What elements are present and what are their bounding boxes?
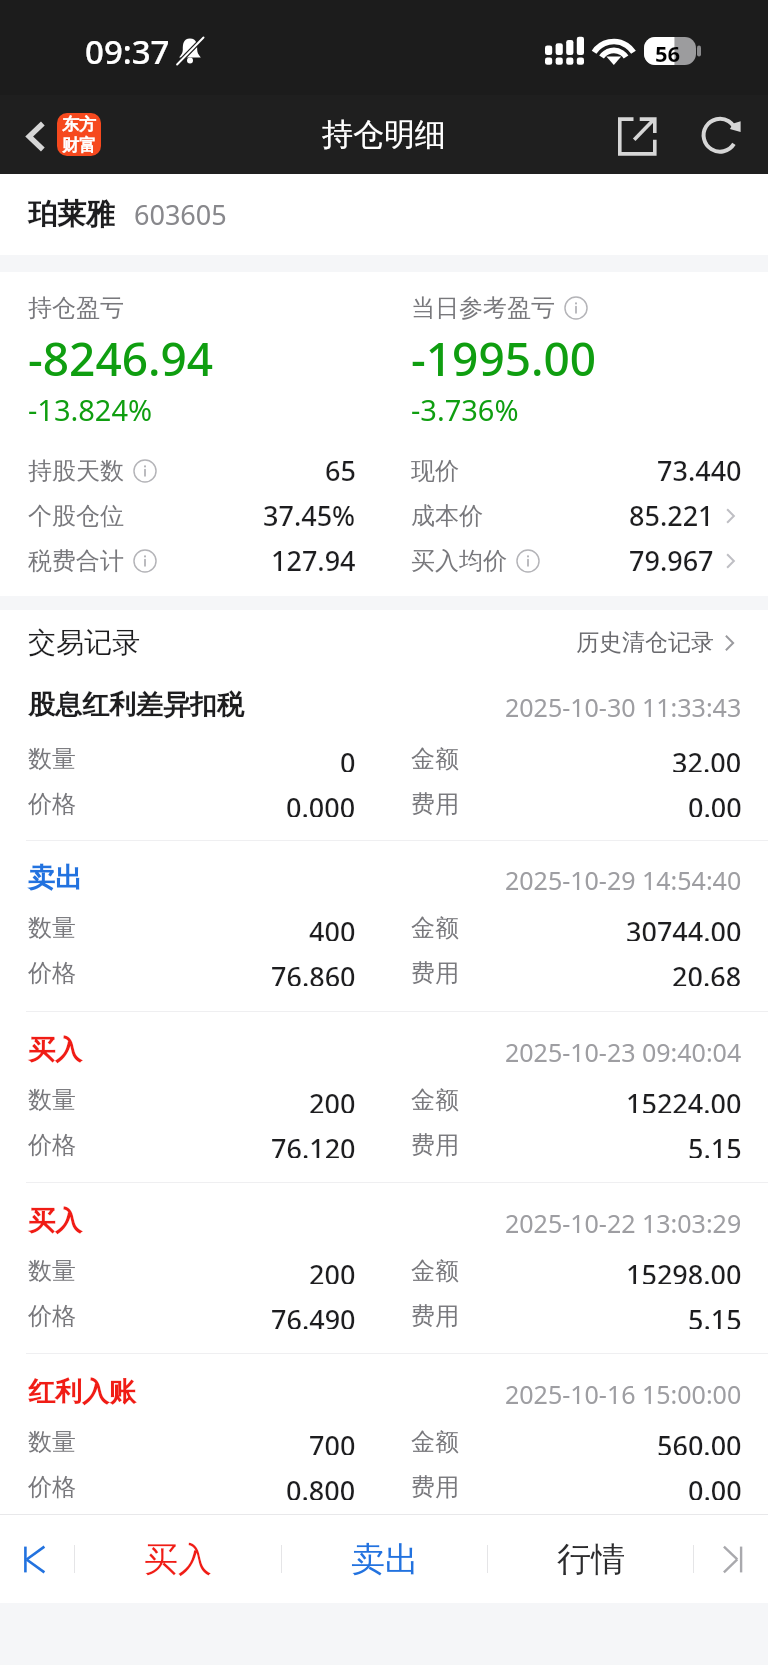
staticText: 卖出	[351, 1538, 419, 1581]
staticText: 700	[309, 1427, 356, 1455]
staticText: 15224.00	[626, 1085, 742, 1113]
staticText: 费用	[411, 958, 459, 986]
button[interactable]: Previous stock	[0, 1515, 74, 1603]
staticText: 5.15	[688, 1301, 742, 1329]
button[interactable]: 买入均价	[411, 538, 742, 583]
staticText: 买入均价	[411, 546, 507, 576]
staticText: 200	[309, 1256, 356, 1284]
staticText: 2025-10-23 09:40:04	[505, 1035, 742, 1069]
button[interactable]: 红利入账	[0, 1353, 768, 1514]
staticText: 股息红利差异扣税	[28, 688, 244, 722]
staticText: 15298.00	[626, 1256, 742, 1284]
button[interactable]: 成本价	[411, 493, 742, 538]
staticText: 持仓盈亏	[28, 293, 124, 323]
button[interactable]: 珀莱雅	[0, 174, 768, 255]
staticText: 交易记录	[28, 625, 140, 660]
button[interactable]: 历史清仓记录	[576, 628, 742, 657]
staticText: 买入	[28, 1033, 82, 1067]
staticText: 红利入账	[28, 1375, 136, 1409]
staticText: 买入	[144, 1538, 212, 1581]
staticText: 2025-10-22 13:03:29	[505, 1206, 742, 1240]
button[interactable]: Next stock	[694, 1515, 768, 1603]
staticText: 卖出	[28, 861, 82, 895]
staticText: -8246.94	[28, 327, 214, 390]
staticText: 0.000	[286, 789, 356, 817]
staticText: 价格	[28, 958, 76, 986]
staticText: -3.736%	[411, 390, 519, 429]
staticText: 2025-10-29 14:54:40	[505, 863, 742, 897]
staticText: 价格	[28, 1130, 76, 1158]
staticText: 400	[309, 913, 356, 941]
button[interactable]: 行情	[488, 1515, 693, 1603]
staticText: 持股天数	[28, 456, 124, 486]
staticText: 金额	[411, 913, 459, 941]
staticText: 历史清仓记录	[576, 628, 714, 657]
staticText: 56	[655, 38, 681, 66]
staticText: 东方	[62, 114, 96, 135]
staticText: 税费合计	[28, 546, 124, 576]
staticText: 费用	[411, 789, 459, 817]
button[interactable]: 买入	[0, 1182, 768, 1353]
button[interactable]: Share	[608, 107, 666, 165]
staticText: 37.45%	[263, 497, 356, 534]
staticText: 行情	[557, 1538, 625, 1581]
staticText: 0.00	[688, 1472, 742, 1500]
staticText: 127.94	[271, 542, 356, 579]
staticText: 76.860	[271, 958, 356, 986]
staticText: 费用	[411, 1301, 459, 1329]
staticText: 金额	[411, 744, 459, 772]
staticText: 费用	[411, 1130, 459, 1158]
staticText: 费用	[411, 1472, 459, 1500]
button[interactable]: East Money home	[57, 113, 101, 156]
staticText: 数量	[28, 744, 76, 772]
staticText: 2025-10-30 11:33:43	[505, 690, 742, 724]
staticText: 73.440	[657, 452, 742, 489]
staticText: 2025-10-16 15:00:00	[505, 1377, 742, 1411]
staticText: 65	[325, 452, 356, 489]
button[interactable]: Back	[7, 108, 63, 164]
staticText: 5.15	[688, 1130, 742, 1158]
staticText: 金额	[411, 1085, 459, 1113]
staticText: 数量	[28, 1085, 76, 1113]
button[interactable]: 股息红利差异扣税	[0, 674, 768, 840]
staticText: 79.967	[629, 542, 714, 579]
staticText: 560.00	[657, 1427, 742, 1455]
staticText: 数量	[28, 1256, 76, 1284]
staticText: 价格	[28, 1301, 76, 1329]
staticText: 0	[340, 744, 356, 772]
staticText: 珀莱雅	[28, 196, 115, 233]
staticText: 金额	[411, 1427, 459, 1455]
staticText: 持仓明细	[322, 115, 446, 154]
staticText: 30744.00	[626, 913, 742, 941]
button[interactable]: 买入	[75, 1515, 281, 1603]
button[interactable]: 卖出	[282, 1515, 487, 1603]
staticText: 个股仓位	[28, 501, 124, 531]
staticText: 价格	[28, 789, 76, 817]
staticText: 20.68	[672, 958, 742, 986]
staticText: 0.800	[286, 1472, 356, 1500]
staticText: 当日参考盈亏	[411, 293, 555, 323]
staticText: 76.120	[271, 1130, 356, 1158]
staticText: 买入	[28, 1204, 82, 1238]
staticText: 76.490	[271, 1301, 356, 1329]
staticText: 0.00	[688, 789, 742, 817]
staticText: 金额	[411, 1256, 459, 1284]
staticText: 200	[309, 1085, 356, 1113]
staticText: 09:37	[85, 29, 170, 74]
staticText: 32.00	[672, 744, 742, 772]
button[interactable]: Refresh	[692, 107, 750, 165]
staticText: 现价	[411, 456, 459, 486]
staticText: -13.824%	[28, 390, 153, 429]
button[interactable]: 卖出	[0, 840, 768, 1011]
staticText: -1995.00	[411, 327, 597, 390]
button[interactable]: 买入	[0, 1011, 768, 1182]
staticText: 数量	[28, 1427, 76, 1455]
staticText: 财富	[62, 135, 96, 156]
staticText: 成本价	[411, 501, 483, 531]
staticText: 85.221	[629, 497, 714, 534]
staticText: 价格	[28, 1472, 76, 1500]
staticText: 数量	[28, 913, 76, 941]
staticText: 603605	[134, 196, 227, 233]
